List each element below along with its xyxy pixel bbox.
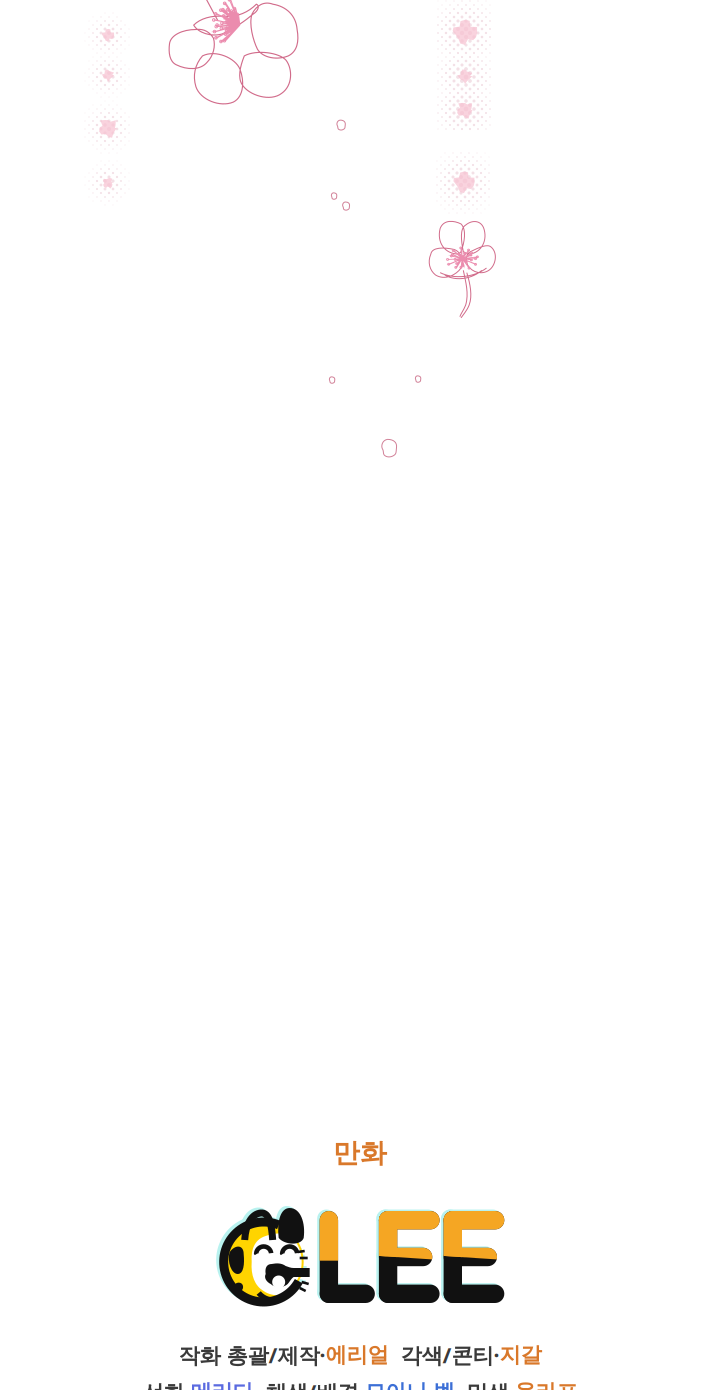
staticText: 올라프 [514, 1379, 577, 1390]
staticText: 밑색· [454, 1378, 514, 1390]
staticText: 메리다 [190, 1379, 253, 1390]
staticText: 선화· [142, 1378, 190, 1390]
staticText: 채색/배경· [253, 1378, 364, 1390]
staticText: 각색/콘티· [388, 1341, 499, 1369]
staticText: 지갈 [499, 1342, 541, 1368]
staticText: 모아나 벨 [364, 1379, 454, 1390]
staticText: 만화 [333, 1137, 387, 1169]
staticText: 작화 총괄/제작· [178, 1341, 325, 1369]
staticText: 에리얼 [325, 1342, 388, 1368]
